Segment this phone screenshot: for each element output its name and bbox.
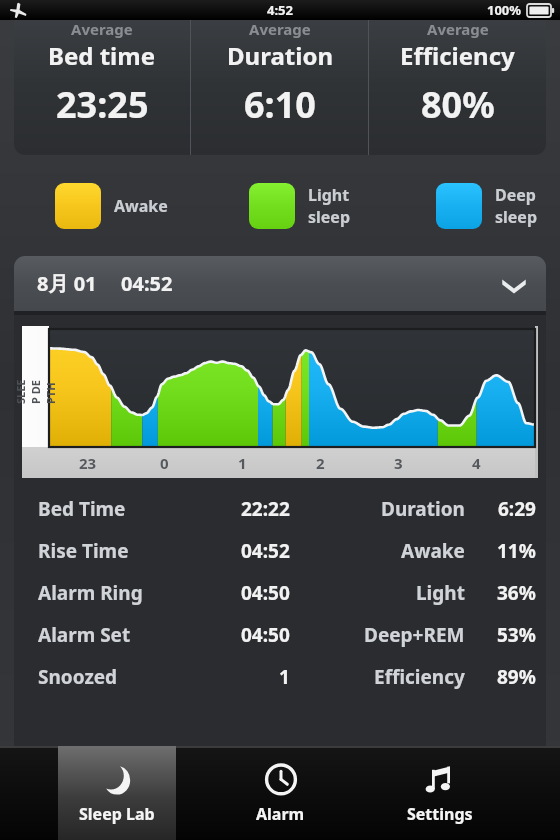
staticText: Average <box>249 19 311 39</box>
button[interactable]: Rise Time <box>14 530 546 572</box>
staticText: 23 <box>79 453 97 473</box>
staticText: 2 <box>316 453 325 473</box>
button[interactable]: Sleep Lab <box>58 746 176 840</box>
staticText: 100% <box>487 1 522 19</box>
button[interactable]: Average <box>369 0 546 155</box>
button[interactable]: Bed Time <box>14 488 546 530</box>
staticText: sleep <box>495 206 538 228</box>
staticText: Duration <box>227 39 333 72</box>
staticText: Awake <box>401 538 465 564</box>
staticText: 04:52 <box>241 538 290 564</box>
button[interactable]: Settings <box>381 746 499 840</box>
staticText: SLEEP DEPTH <box>14 377 58 404</box>
staticText: 80% <box>421 80 495 129</box>
staticText: 6:29 <box>498 496 536 522</box>
staticText: 6:10 <box>244 80 316 129</box>
staticText: Deep+REM <box>364 622 465 648</box>
staticText: Average <box>427 19 489 39</box>
other: Expand details <box>500 270 528 298</box>
staticText: 89% <box>497 664 536 690</box>
button[interactable]: Alarm Set <box>14 614 546 656</box>
staticText: Efficiency <box>374 664 465 690</box>
staticText: Sleep Lab <box>79 803 155 825</box>
staticText: Light <box>416 580 465 606</box>
button[interactable]: 8月 01 <box>14 256 546 311</box>
staticText: Awake <box>114 195 168 217</box>
staticText: Alarm <box>256 803 305 825</box>
button[interactable]: Awake <box>0 155 186 256</box>
staticText: 1 <box>238 453 247 473</box>
staticText: 04:52 <box>121 270 173 297</box>
staticText: Rise Time <box>38 538 129 564</box>
button[interactable]: Average <box>14 0 190 155</box>
staticText: 36% <box>497 580 536 606</box>
staticText: 0 <box>160 453 169 473</box>
staticText: Efficiency <box>400 39 515 72</box>
staticText: Bed time <box>48 39 156 72</box>
staticText: Alarm Set <box>38 622 131 648</box>
staticText: Duration <box>381 496 465 522</box>
staticText: Alarm Ring <box>38 580 143 606</box>
staticText: 3 <box>394 453 403 473</box>
staticText: 53% <box>497 622 536 648</box>
staticText: 1 <box>279 664 290 690</box>
button[interactable]: Light <box>186 155 373 256</box>
button[interactable]: Alarm Ring <box>14 572 546 614</box>
button[interactable]: Snoozed <box>14 656 546 698</box>
staticText: 22:22 <box>241 496 290 522</box>
staticText: 8月 01 <box>37 270 97 297</box>
staticText: Average <box>71 19 133 39</box>
staticText: 04:50 <box>241 580 290 606</box>
staticText: sleep <box>308 206 351 228</box>
staticText: 11% <box>497 538 536 564</box>
button[interactable]: Average <box>191 0 368 155</box>
staticText: Settings <box>407 803 473 825</box>
staticText: Bed Time <box>38 496 126 522</box>
staticText: Deep <box>495 184 536 206</box>
staticText: Snoozed <box>38 664 118 690</box>
button[interactable]: Alarm <box>221 746 339 840</box>
staticText: 23:25 <box>56 80 149 129</box>
button[interactable]: Deep <box>373 155 560 256</box>
staticText: Light <box>308 184 350 206</box>
staticText: 4:52 <box>267 1 293 19</box>
staticText: 04:50 <box>241 622 290 648</box>
staticText: 4 <box>472 453 481 473</box>
